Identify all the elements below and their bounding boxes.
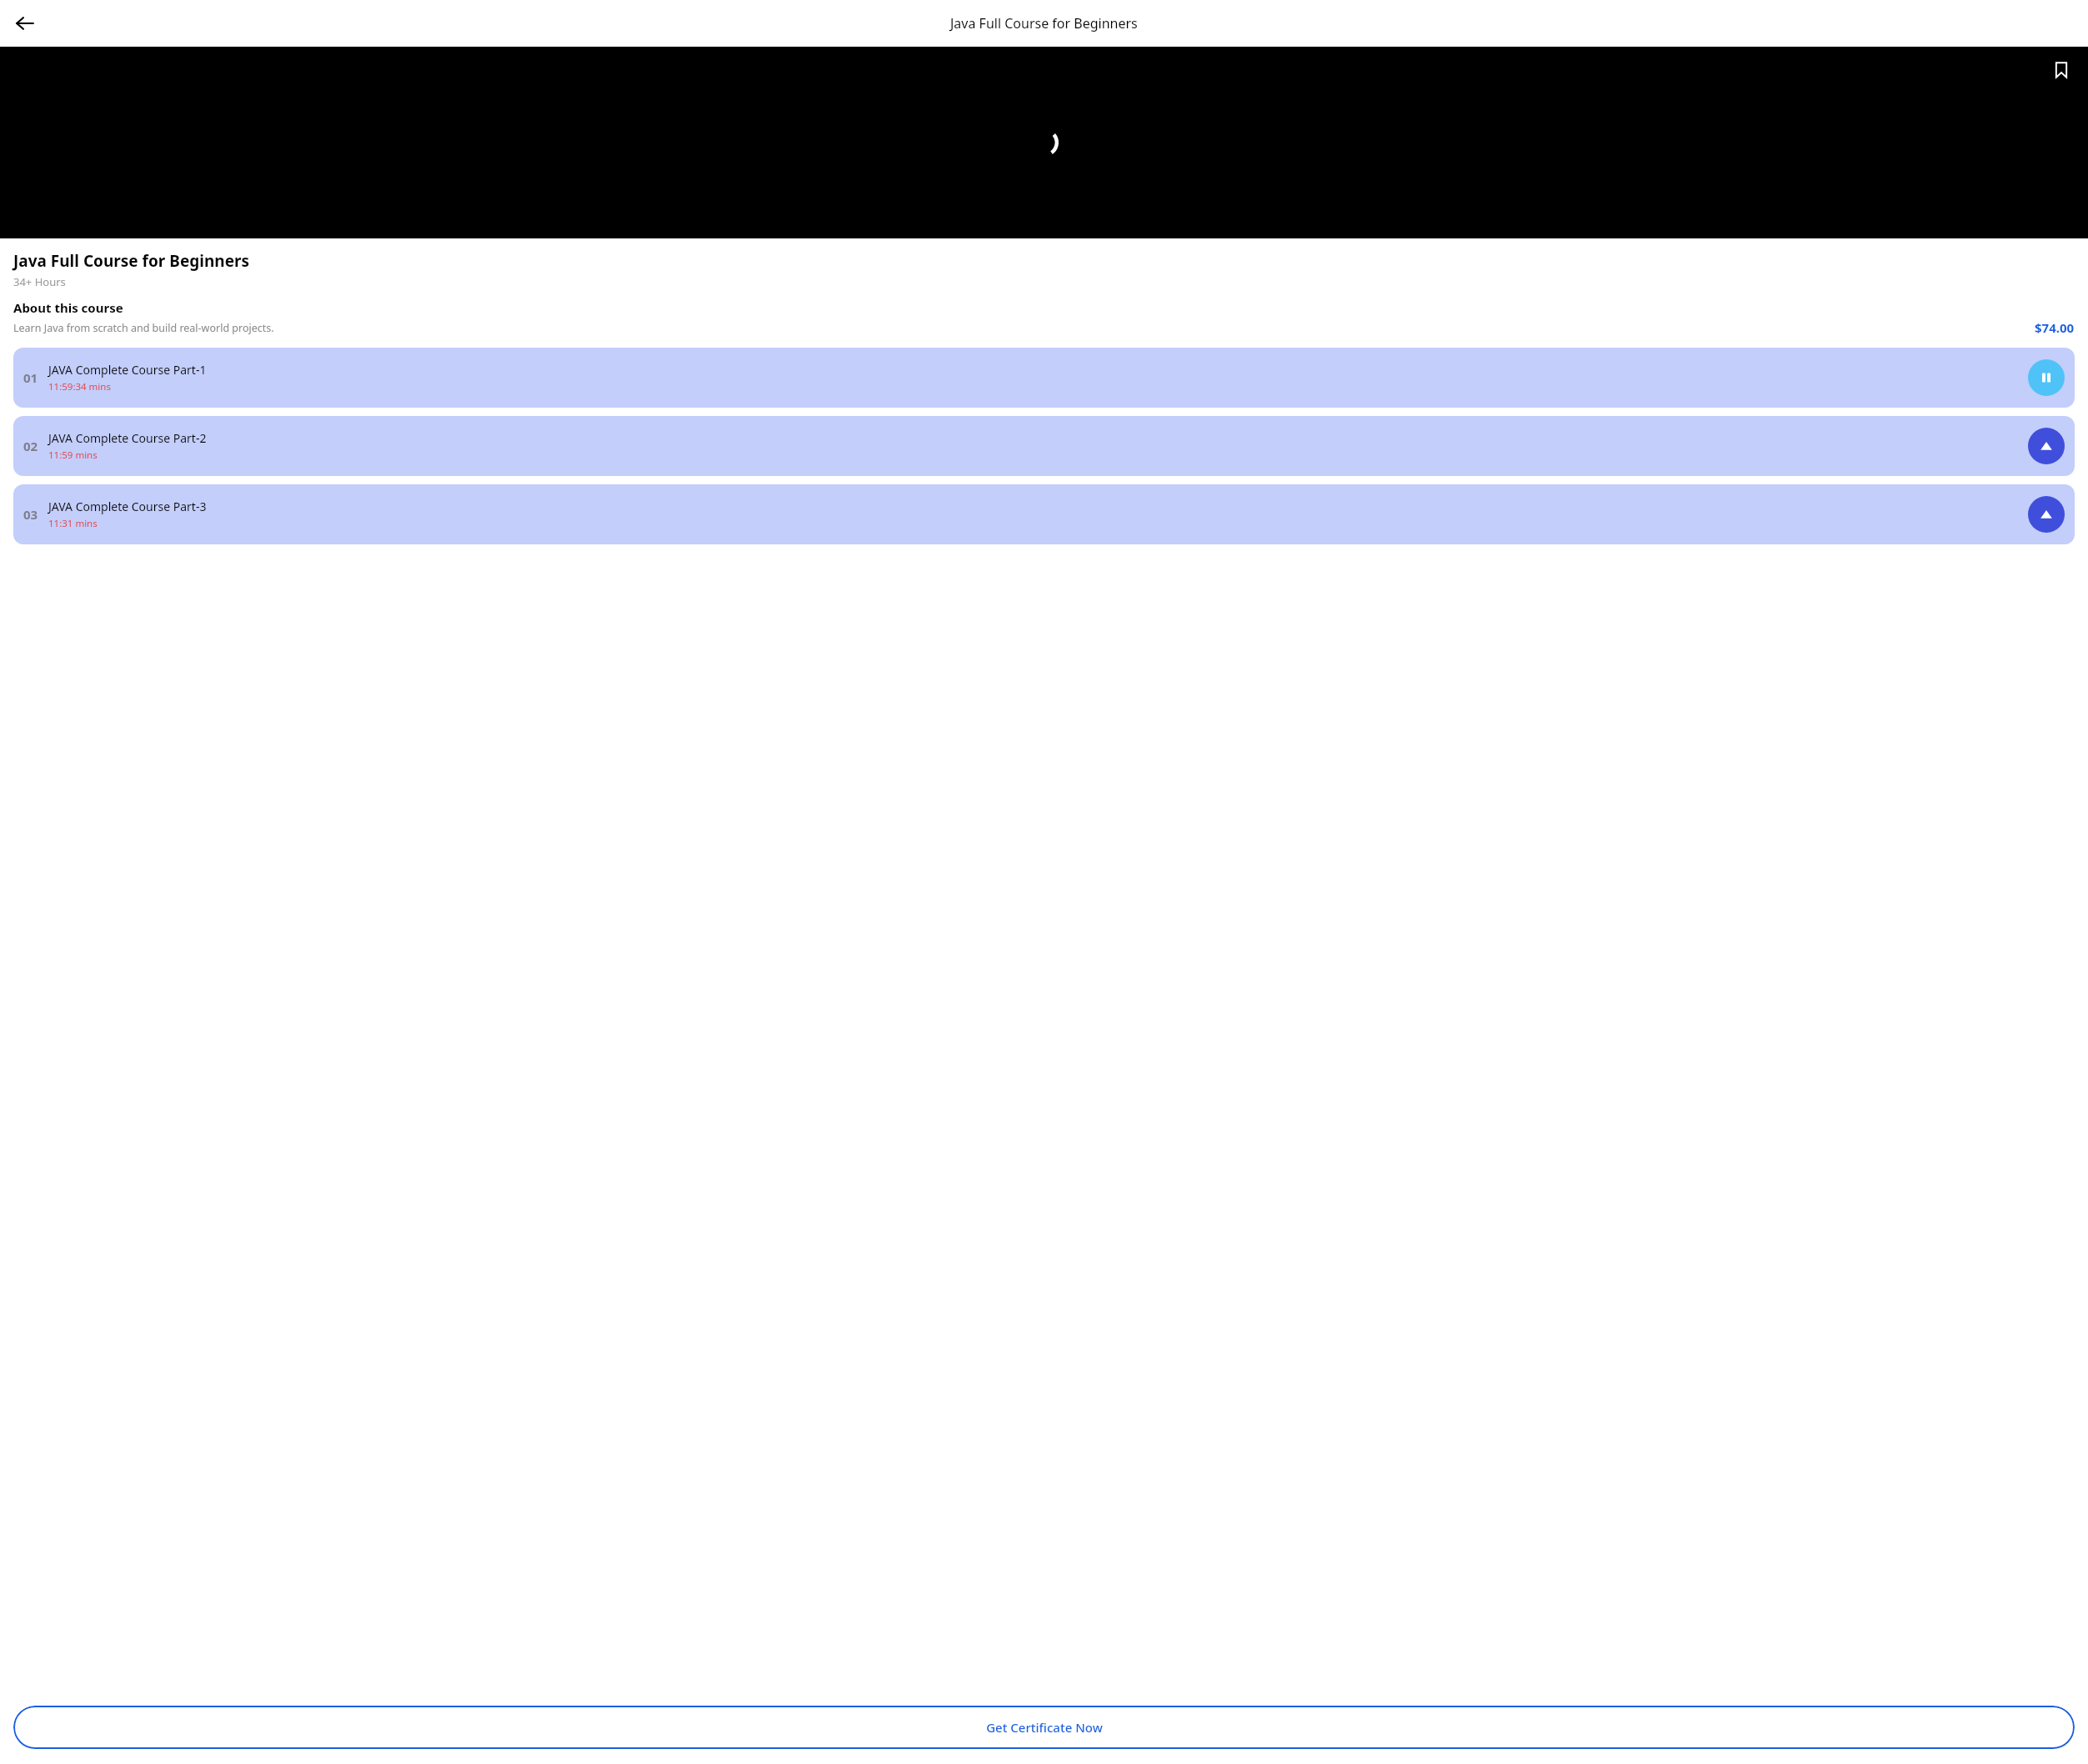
button[interactable]: Play [2028, 496, 2065, 533]
button[interactable]: 01 [13, 348, 2075, 408]
staticText: 11:59 mins [48, 449, 98, 462]
staticText: JAVA Complete Course Part-2 [48, 430, 207, 446]
button[interactable]: Get Certificate Now [13, 1706, 2075, 1749]
staticText: 02 [23, 438, 38, 454]
staticText: About this course [13, 299, 123, 316]
staticText: $74.00 [2035, 319, 2075, 336]
button[interactable]: 02 [13, 416, 2075, 476]
staticText: JAVA Complete Course Part-1 [48, 362, 207, 378]
staticText: Get Certificate Now [986, 1719, 1103, 1736]
button[interactable]: Bookmark [2043, 52, 2080, 88]
staticText: 11:31 mins [48, 517, 98, 530]
button[interactable]: Play [2028, 428, 2065, 464]
staticText: 11:59:34 mins [48, 380, 111, 393]
button[interactable]: Pause [2028, 359, 2065, 396]
staticText: Learn Java from scratch and build real-w… [13, 321, 2035, 335]
staticText: 34+ Hours [13, 274, 66, 289]
button[interactable]: 03 [13, 484, 2075, 544]
button[interactable]: Back [5, 3, 45, 43]
staticText: JAVA Complete Course Part-3 [48, 499, 207, 514]
staticText: 01 [23, 369, 38, 386]
staticText: Java Full Course for Beginners [950, 14, 1138, 33]
staticText: Java Full Course for Beginners [13, 250, 250, 272]
staticText: 03 [23, 506, 38, 523]
